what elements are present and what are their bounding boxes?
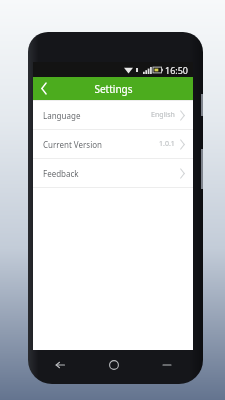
- staticText: Feedback: [43, 168, 79, 179]
- button[interactable]: Language: [33, 101, 193, 129]
- button[interactable]: Home: [87, 350, 140, 380]
- button[interactable]: Recent apps: [140, 350, 193, 380]
- button[interactable]: Back: [33, 77, 55, 100]
- staticText: English: [151, 110, 175, 120]
- button[interactable]: Feedback: [33, 159, 193, 187]
- staticText: 1.0.1: [159, 139, 175, 149]
- staticText: Language: [43, 110, 81, 121]
- staticText: Settings: [94, 82, 133, 96]
- staticText: Current Version: [43, 139, 103, 150]
- staticText: 16:50: [165, 64, 189, 76]
- button[interactable]: Current Version: [33, 130, 193, 158]
- button[interactable]: Back: [33, 350, 87, 380]
